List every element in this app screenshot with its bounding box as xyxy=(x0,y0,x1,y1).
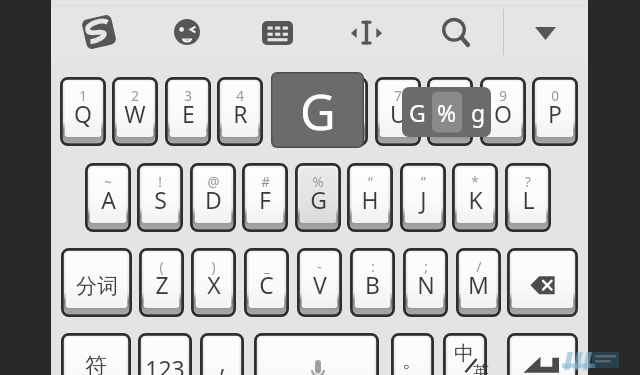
button[interactable]: 123 xyxy=(138,333,192,375)
button[interactable]: 分词 xyxy=(61,248,132,317)
button[interactable]: 4 xyxy=(217,77,263,146)
staticText: - xyxy=(317,258,322,276)
staticText: / xyxy=(476,258,482,276)
staticText: _ xyxy=(264,258,270,276)
staticText: g xyxy=(471,97,486,128)
button[interactable]: Emoji xyxy=(174,19,200,45)
staticText: A xyxy=(101,184,116,215)
staticText: 符 xyxy=(85,352,107,375)
button[interactable]: ; xyxy=(403,248,448,317)
button[interactable]: 2 xyxy=(112,77,158,146)
staticText: Q xyxy=(74,98,92,129)
button[interactable]: 符 xyxy=(61,333,131,375)
staticText: N xyxy=(417,269,435,300)
button[interactable]: _ xyxy=(244,248,289,317)
staticText: D xyxy=(205,184,222,215)
button[interactable]: Search xyxy=(440,15,472,47)
button[interactable]: @ xyxy=(190,163,236,232)
button[interactable]: 9 xyxy=(480,77,526,146)
button[interactable]: # xyxy=(242,163,288,232)
staticText: G xyxy=(300,78,336,145)
staticText: * xyxy=(471,173,479,191)
button[interactable]: ? xyxy=(505,163,551,232)
button[interactable]: % xyxy=(295,163,341,232)
button[interactable]: Space xyxy=(254,333,379,375)
staticText: G xyxy=(409,97,426,128)
staticText: P xyxy=(548,98,562,129)
button[interactable]: ~ xyxy=(85,163,131,232)
staticText: @ xyxy=(207,173,220,191)
staticText: C xyxy=(259,269,274,300)
staticText: G xyxy=(310,184,327,215)
button[interactable]: 3 xyxy=(165,77,211,146)
staticText: # xyxy=(261,173,270,191)
staticText: 4 xyxy=(236,87,244,105)
staticText: 2 xyxy=(131,87,139,105)
staticText: : xyxy=(371,258,375,276)
button[interactable]: Sogou menu xyxy=(79,11,119,51)
staticText: 9 xyxy=(499,87,507,105)
staticText: I xyxy=(446,98,454,129)
staticText: ; xyxy=(424,258,428,276)
staticText: ~ xyxy=(104,173,112,191)
staticText: 中 xyxy=(454,341,474,366)
button[interactable]: ( xyxy=(139,248,184,317)
button[interactable]: Hide keyboard xyxy=(535,27,556,40)
staticText: ! xyxy=(158,173,162,191)
staticText: ” xyxy=(421,173,426,191)
button[interactable]: G xyxy=(402,87,491,137)
button[interactable]: ! xyxy=(137,163,183,232)
staticText: E xyxy=(182,98,195,129)
button[interactable]: 1 xyxy=(60,77,106,146)
button[interactable]: 。 xyxy=(391,333,434,375)
staticText: W xyxy=(124,98,146,129)
staticText: F xyxy=(259,184,271,215)
staticText: M xyxy=(468,269,489,300)
button[interactable]: G xyxy=(271,72,364,148)
staticText: X xyxy=(207,269,221,300)
staticText: J xyxy=(420,184,427,215)
button[interactable]: ) xyxy=(191,248,236,317)
staticText: 英 xyxy=(473,362,489,375)
staticText: , xyxy=(219,347,226,375)
staticText: ? xyxy=(525,173,531,191)
staticText: 分词 xyxy=(76,273,118,299)
staticText: K xyxy=(468,184,483,215)
staticText: 1 xyxy=(79,87,87,105)
staticText: ( xyxy=(159,258,164,276)
staticText: V xyxy=(313,269,327,300)
button[interactable]: : xyxy=(350,248,395,317)
button[interactable]: “ xyxy=(347,163,393,232)
button[interactable]: / xyxy=(456,248,501,317)
staticText: L xyxy=(522,184,535,215)
staticText: O xyxy=(494,98,512,129)
staticText: 123 xyxy=(145,353,185,375)
button[interactable]: 7 xyxy=(375,77,421,146)
staticText: % xyxy=(437,97,457,128)
button[interactable]: , xyxy=(200,333,244,375)
staticText: “ xyxy=(368,173,373,191)
button[interactable]: Move cursor xyxy=(351,20,382,46)
staticText: U xyxy=(390,98,407,129)
button[interactable]: ” xyxy=(400,163,446,232)
staticText: 0 xyxy=(551,87,559,105)
button[interactable]: - xyxy=(297,248,342,317)
button[interactable]: 0 xyxy=(532,77,578,146)
button[interactable]: 8 xyxy=(427,77,473,146)
staticText: R xyxy=(233,98,248,129)
button[interactable]: Backspace xyxy=(507,248,578,317)
staticText: B xyxy=(365,269,380,300)
button[interactable]: 6 xyxy=(322,77,368,146)
button[interactable]: Enter xyxy=(507,333,578,375)
button[interactable]: * xyxy=(452,163,498,232)
staticText: ) xyxy=(211,258,216,276)
staticText: S xyxy=(154,184,167,215)
staticText: % xyxy=(312,173,324,191)
staticText: Z xyxy=(155,269,169,300)
staticText: 7 xyxy=(394,87,402,105)
staticText: H xyxy=(361,184,379,215)
button[interactable]: Chinese English toggle xyxy=(443,333,487,375)
button[interactable]: Switch keyboard xyxy=(262,21,293,45)
